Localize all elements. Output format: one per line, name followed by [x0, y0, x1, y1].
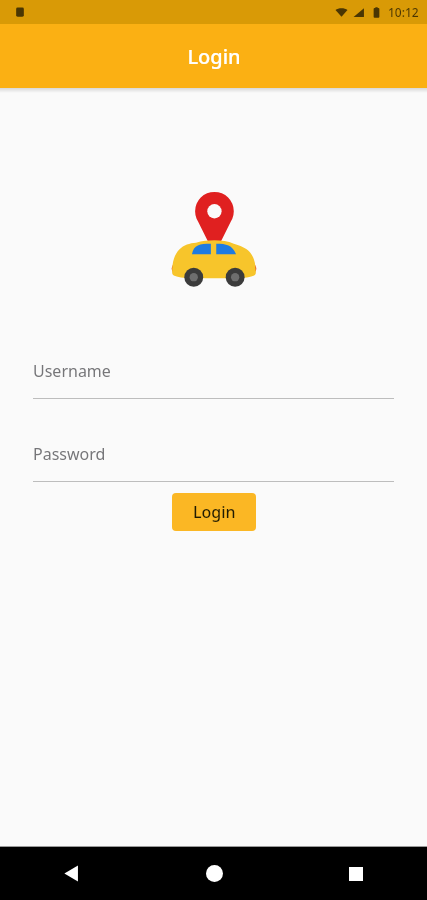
button[interactable]: Password [33, 439, 394, 482]
staticText: Username [33, 360, 111, 382]
staticText: Login [193, 501, 236, 523]
button[interactable]: Back [0, 847, 143, 900]
staticText: 10:12 [388, 4, 419, 20]
button[interactable]: Home [143, 847, 285, 900]
button[interactable]: Recent apps [285, 847, 427, 900]
staticText: Password [33, 443, 106, 465]
button[interactable]: Login [172, 493, 256, 531]
staticText: Login [187, 43, 241, 70]
button[interactable]: Username [33, 356, 394, 399]
